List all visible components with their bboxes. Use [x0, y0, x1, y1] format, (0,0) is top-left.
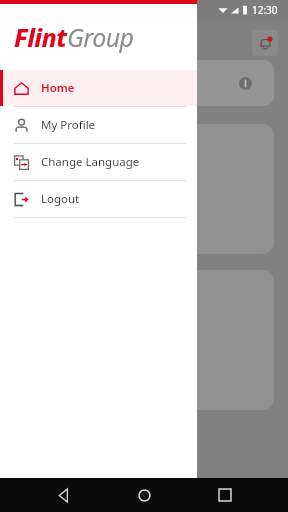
button[interactable]: Notifications: [252, 30, 278, 56]
staticText: Flint: [14, 20, 67, 54]
button[interactable]: Home: [127, 478, 161, 512]
button[interactable]: My Profile: [0, 107, 197, 143]
staticText: Send a Message: [28, 208, 127, 226]
button[interactable]: Send a Message: [14, 124, 274, 254]
staticText: Home: [41, 80, 75, 96]
staticText: 12:30: [252, 3, 278, 17]
button[interactable]: Change Language: [0, 144, 197, 180]
staticText: Group: [67, 20, 134, 54]
button[interactable]: Logout: [0, 181, 197, 217]
button[interactable]: [14, 60, 274, 106]
button[interactable]: Back: [47, 478, 81, 512]
staticText: Change Language: [41, 154, 140, 170]
staticText: Logout: [41, 191, 80, 207]
button[interactable]: Schedule a: [14, 270, 274, 410]
staticText: My Profile: [41, 117, 96, 133]
button[interactable]: Recent apps: [208, 478, 242, 512]
button[interactable]: Home: [0, 70, 197, 106]
